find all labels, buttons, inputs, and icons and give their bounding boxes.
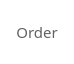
staticText: Order [16, 22, 58, 42]
button[interactable]: Order [0, 0, 74, 64]
